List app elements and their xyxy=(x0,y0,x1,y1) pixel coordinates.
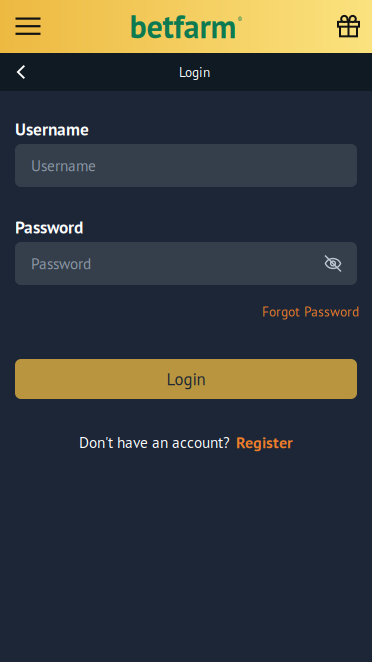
button[interactable]: Menu xyxy=(8,0,48,53)
staticText: Register xyxy=(236,432,293,453)
button[interactable]: Register xyxy=(236,432,293,453)
staticText: Forgot Password xyxy=(262,303,359,320)
button[interactable]: Show password xyxy=(316,242,350,285)
staticText: betfarm xyxy=(129,6,236,47)
staticText: Login xyxy=(179,63,210,81)
staticText: Password xyxy=(15,216,83,238)
staticText: Username xyxy=(15,118,89,140)
staticText: Login xyxy=(166,368,205,390)
staticText: Username xyxy=(31,156,96,175)
button[interactable]: Login xyxy=(15,359,357,399)
button[interactable]: Back xyxy=(0,53,42,91)
staticText: Password xyxy=(31,254,91,273)
button[interactable]: Promotions xyxy=(336,0,361,53)
staticText: Don't have an account? xyxy=(79,432,230,452)
staticText: ® xyxy=(237,15,242,24)
button[interactable]: Forgot Password xyxy=(262,285,357,317)
